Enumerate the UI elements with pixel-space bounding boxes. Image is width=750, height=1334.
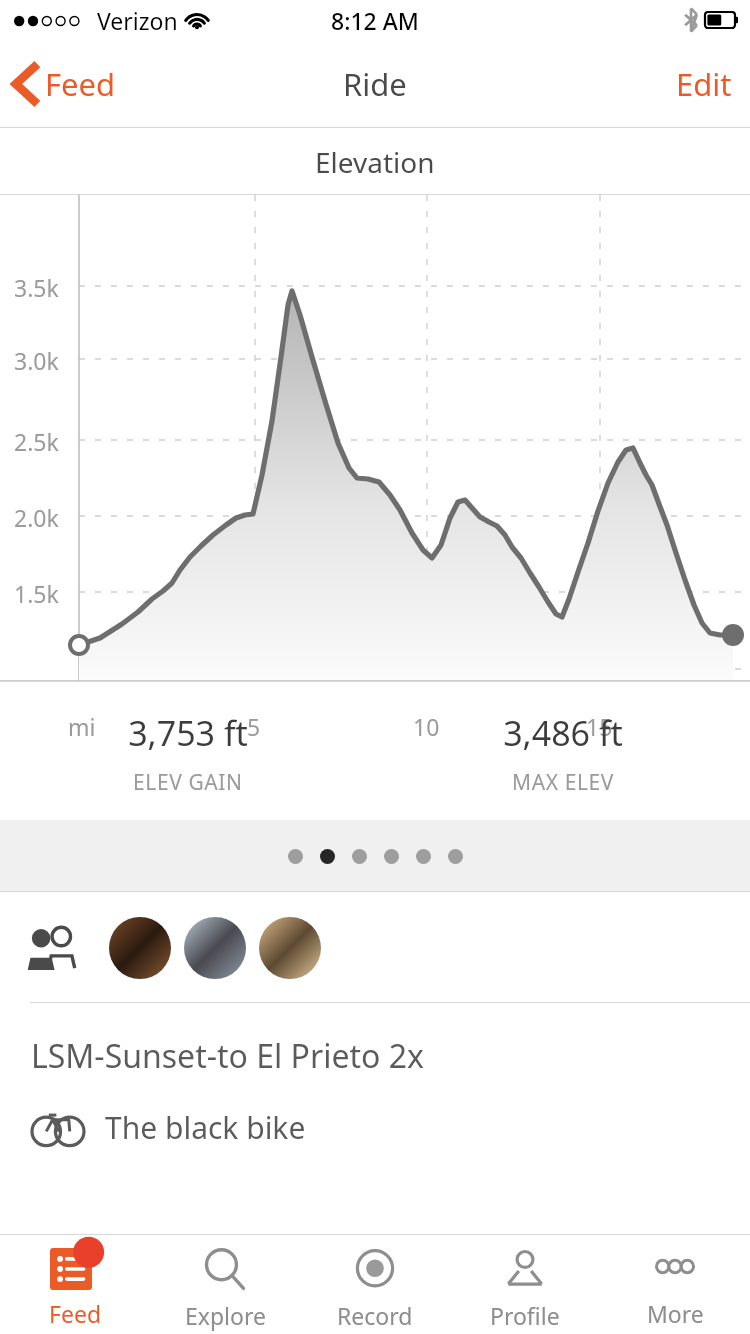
button[interactable]: Athletes (26, 926, 82, 970)
button[interactable]: Edit (658, 53, 750, 115)
staticText: 3.0k (14, 345, 59, 376)
button[interactable]: Record (300, 1234, 450, 1334)
staticText: 3,753 ft (128, 710, 248, 756)
staticText: Profile (490, 1300, 560, 1331)
staticText: ELEV GAIN (133, 768, 243, 797)
button[interactable]: Page 5 (416, 849, 431, 864)
button[interactable]: LSM-Sunset-to El Prieto 2x (0, 1003, 750, 1170)
button[interactable]: Page 4 (384, 849, 399, 864)
button[interactable]: 3,486 ft (375, 682, 750, 820)
staticText: More (647, 1298, 704, 1329)
staticText: 2.5k (14, 426, 59, 457)
button[interactable]: Athlete 1 (109, 917, 171, 979)
button[interactable]: Feed (0, 55, 128, 113)
staticText: Elevation (315, 143, 435, 181)
staticText: Feed (49, 1298, 102, 1329)
other: More (653, 1248, 697, 1290)
staticText: Ride (343, 63, 407, 105)
button[interactable]: Page 1 (288, 849, 303, 864)
staticText: 5 (247, 711, 261, 742)
button[interactable]: More (600, 1234, 750, 1334)
button[interactable]: Page 2 (320, 849, 335, 864)
staticText: Verizon (97, 5, 178, 36)
button[interactable]: Athlete 3 (259, 917, 321, 979)
staticText: 8:12 AM (331, 5, 419, 36)
button[interactable]: Athlete 2 (184, 917, 246, 979)
other: Record (353, 1248, 397, 1292)
staticText: 10 (413, 711, 440, 742)
staticText: 3.5k (14, 272, 59, 303)
staticText: Feed (45, 63, 116, 105)
staticText: 3,486 ft (503, 710, 623, 756)
staticText: MAX ELEV (512, 768, 614, 797)
button[interactable]: 3,753 ft (0, 682, 375, 820)
staticText: mi (68, 711, 96, 742)
staticText: Explore (185, 1300, 266, 1331)
other: Explore (203, 1248, 247, 1292)
other: Profile (503, 1248, 547, 1292)
staticText: Record (337, 1300, 413, 1331)
staticText: 1.5k (14, 578, 59, 609)
staticText: 2.0k (14, 502, 59, 533)
staticText: 15 (586, 711, 613, 742)
button[interactable]: Page 6 (448, 849, 463, 864)
staticText: The black bike (105, 1107, 306, 1148)
button[interactable]: Explore (150, 1234, 300, 1334)
button[interactable]: Profile (450, 1234, 600, 1334)
button[interactable]: Feed (0, 1234, 150, 1334)
staticText: LSM-Sunset-to El Prieto 2x (31, 1034, 424, 1078)
button[interactable]: Page 3 (352, 849, 367, 864)
